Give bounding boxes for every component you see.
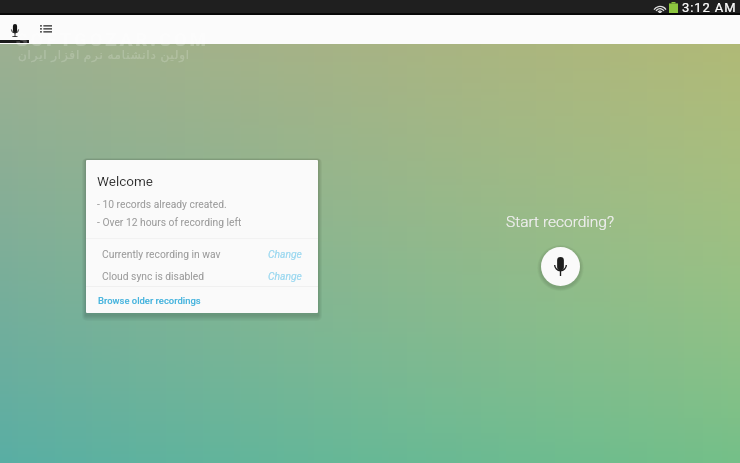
- staticText: Change: [268, 270, 302, 282]
- button[interactable]: Cloud sync is disabled: [86, 265, 318, 287]
- staticText: Start recording?: [506, 213, 614, 231]
- button[interactable]: Browse older recordings: [86, 287, 318, 313]
- staticText: 3:12 AM: [682, 0, 737, 15]
- staticText: SOFTGOZAR.COM: [16, 29, 210, 51]
- button[interactable]: Currently recording in wav: [86, 243, 318, 265]
- staticText: Currently recording in wav: [102, 248, 221, 260]
- staticText: - Over 12 hours of recording left: [97, 216, 242, 228]
- button[interactable]: Record: [0, 15, 30, 44]
- staticText: Browse older recordings: [98, 295, 201, 306]
- button[interactable]: Recordings list: [31, 15, 61, 44]
- staticText: Cloud sync is disabled: [102, 270, 205, 282]
- staticText: Change: [268, 248, 302, 260]
- staticText: اولین دانشنامه نرم افزار ایران: [18, 48, 190, 62]
- staticText: Welcome: [97, 173, 153, 189]
- button[interactable]: Start recording: [541, 247, 580, 286]
- staticText: - 10 records already created.: [97, 198, 227, 210]
